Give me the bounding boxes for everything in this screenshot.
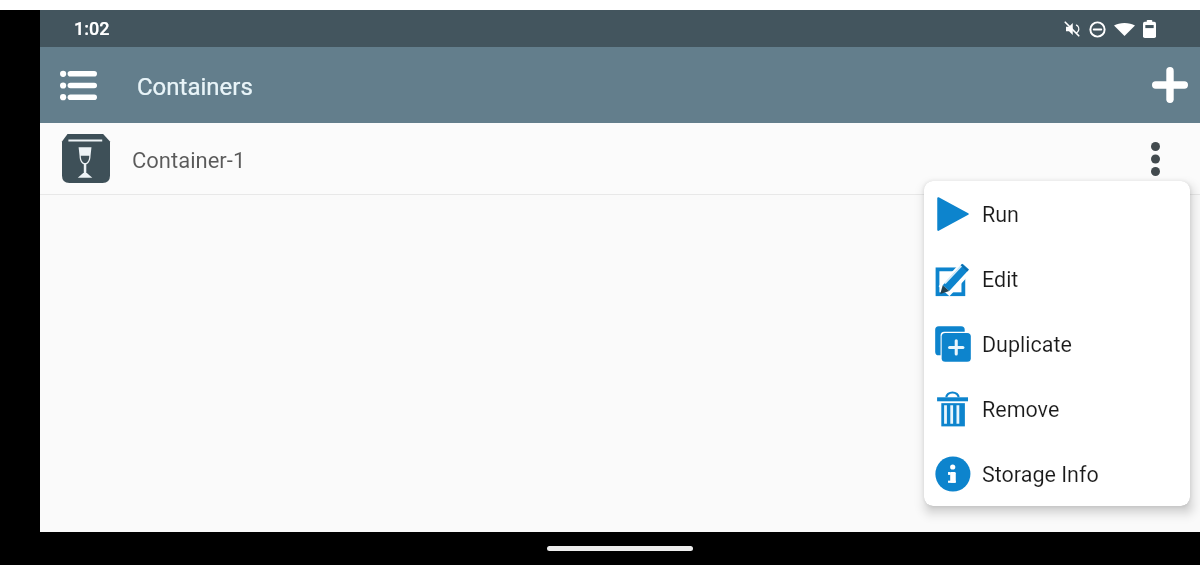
button[interactable]: Run — [924, 181, 1190, 246]
staticText: Run — [982, 202, 1019, 227]
button[interactable]: Container-1 — [40, 123, 1200, 194]
button[interactable]: Storage Info — [924, 441, 1190, 506]
staticText: Containers — [137, 73, 253, 101]
staticText: 1:02 — [74, 18, 110, 39]
staticText: Storage Info — [982, 462, 1099, 487]
button[interactable]: Menu — [50, 57, 106, 113]
staticText: Duplicate — [982, 332, 1072, 357]
staticText: Remove — [982, 397, 1060, 422]
staticText: Container-1 — [132, 148, 246, 174]
button[interactable]: Edit — [924, 246, 1190, 311]
button[interactable]: More options — [1127, 131, 1183, 187]
button[interactable]: Add — [1142, 57, 1198, 113]
button[interactable]: Remove — [924, 376, 1190, 441]
button[interactable]: Duplicate — [924, 311, 1190, 376]
staticText: Edit — [982, 267, 1019, 292]
